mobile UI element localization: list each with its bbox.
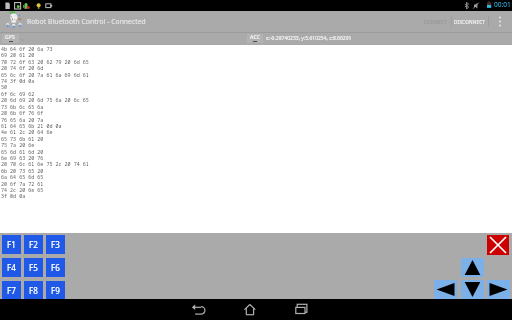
staticText: 73 6b 6c 65 6a bbox=[1, 104, 44, 109]
button[interactable]: More options bbox=[491, 13, 508, 30]
staticText: F5 bbox=[29, 262, 38, 273]
staticText: 65 73 6b 61 20 bbox=[1, 136, 44, 141]
button[interactable]: F9 bbox=[46, 281, 65, 300]
button[interactable]: Recents bbox=[280, 299, 324, 320]
staticText: 00:01 bbox=[494, 0, 511, 9]
staticText: 4b 64 6f 20 6a 73 bbox=[1, 46, 53, 51]
staticText: F1 bbox=[7, 239, 16, 250]
staticText: 6a 64 65 6d 65 bbox=[1, 174, 44, 179]
button[interactable]: DISCONNECT bbox=[452, 13, 488, 30]
button[interactable]: GPS bbox=[2, 34, 19, 43]
staticText: F6 bbox=[51, 262, 60, 273]
staticText: 69 20 61 20 bbox=[1, 52, 35, 57]
button[interactable]: F4 bbox=[2, 258, 21, 277]
staticText: F2 bbox=[29, 239, 38, 250]
staticText: F9 bbox=[51, 285, 60, 296]
staticText: 65 6d 61 6d 20 bbox=[1, 149, 44, 154]
staticText: -,- bbox=[20, 35, 25, 42]
button[interactable]: Left bbox=[434, 280, 457, 299]
staticText: 20 6b 6f 76 6f bbox=[1, 110, 44, 115]
button[interactable]: Back bbox=[176, 299, 220, 320]
button[interactable]: Stop bbox=[487, 235, 509, 255]
button[interactable]: Down bbox=[461, 280, 484, 299]
button[interactable]: F3 bbox=[46, 235, 65, 254]
button[interactable]: Home bbox=[228, 299, 272, 320]
staticText: 6e 69 63 20 76 bbox=[1, 155, 44, 160]
staticText: 6b 20 73 65 20 bbox=[1, 168, 44, 173]
staticText: 20 74 6f 20 6d bbox=[1, 65, 44, 70]
staticText: 20 6f 7a 72 61 bbox=[1, 181, 44, 186]
button[interactable]: F8 bbox=[24, 281, 43, 300]
staticText: 75 7a 20 6e bbox=[1, 142, 35, 147]
staticText: x:-0.28740233, y:5.610254, z:8.66291 bbox=[266, 35, 352, 42]
button[interactable]: F1 bbox=[2, 235, 21, 254]
staticText: 74 2c 20 6e 65 bbox=[1, 187, 44, 192]
button[interactable]: ACC bbox=[247, 34, 263, 43]
staticText: F4 bbox=[7, 262, 16, 273]
staticText: 4e 61 2c 20 64 6e bbox=[1, 129, 53, 134]
button[interactable]: F2 bbox=[24, 235, 43, 254]
staticText: 74 3f 0d 0a bbox=[1, 78, 35, 83]
staticText: GPS bbox=[5, 34, 16, 41]
staticText: 76 65 6a 20 7a bbox=[1, 117, 44, 122]
staticText: CONNECT bbox=[424, 19, 448, 25]
staticText: F8 bbox=[29, 285, 38, 296]
staticText: Robot Bluetooth Control - Connected bbox=[27, 17, 146, 26]
staticText: DISCONNECT bbox=[454, 19, 486, 25]
staticText: 20 70 6c 61 6e 75 2c 20 74 61 bbox=[1, 161, 89, 166]
button[interactable]: CONNECT bbox=[420, 13, 452, 30]
button[interactable]: F6 bbox=[46, 258, 65, 277]
staticText: 50 bbox=[1, 84, 8, 89]
button[interactable]: F5 bbox=[24, 258, 43, 277]
button[interactable]: Up bbox=[461, 258, 484, 277]
staticText: 3f 0d 0a bbox=[1, 193, 26, 198]
button[interactable]: Right bbox=[487, 280, 510, 299]
staticText: 6f 6c 69 62 bbox=[1, 91, 35, 96]
staticText: 20 6d 69 20 6d 75 6a 20 6c 65 bbox=[1, 97, 89, 102]
staticText: F7 bbox=[7, 285, 16, 296]
staticText: 61 64 65 6b 21 0d 0a bbox=[1, 123, 62, 128]
staticText: ACC bbox=[250, 34, 261, 41]
button[interactable]: F7 bbox=[2, 281, 21, 300]
staticText: 65 6c 6f 20 7a 61 6a 69 6d 61 bbox=[1, 72, 89, 77]
staticText: F3 bbox=[51, 239, 60, 250]
staticText: 70 72 6f 63 20 62 79 20 6d 65 bbox=[1, 59, 89, 64]
